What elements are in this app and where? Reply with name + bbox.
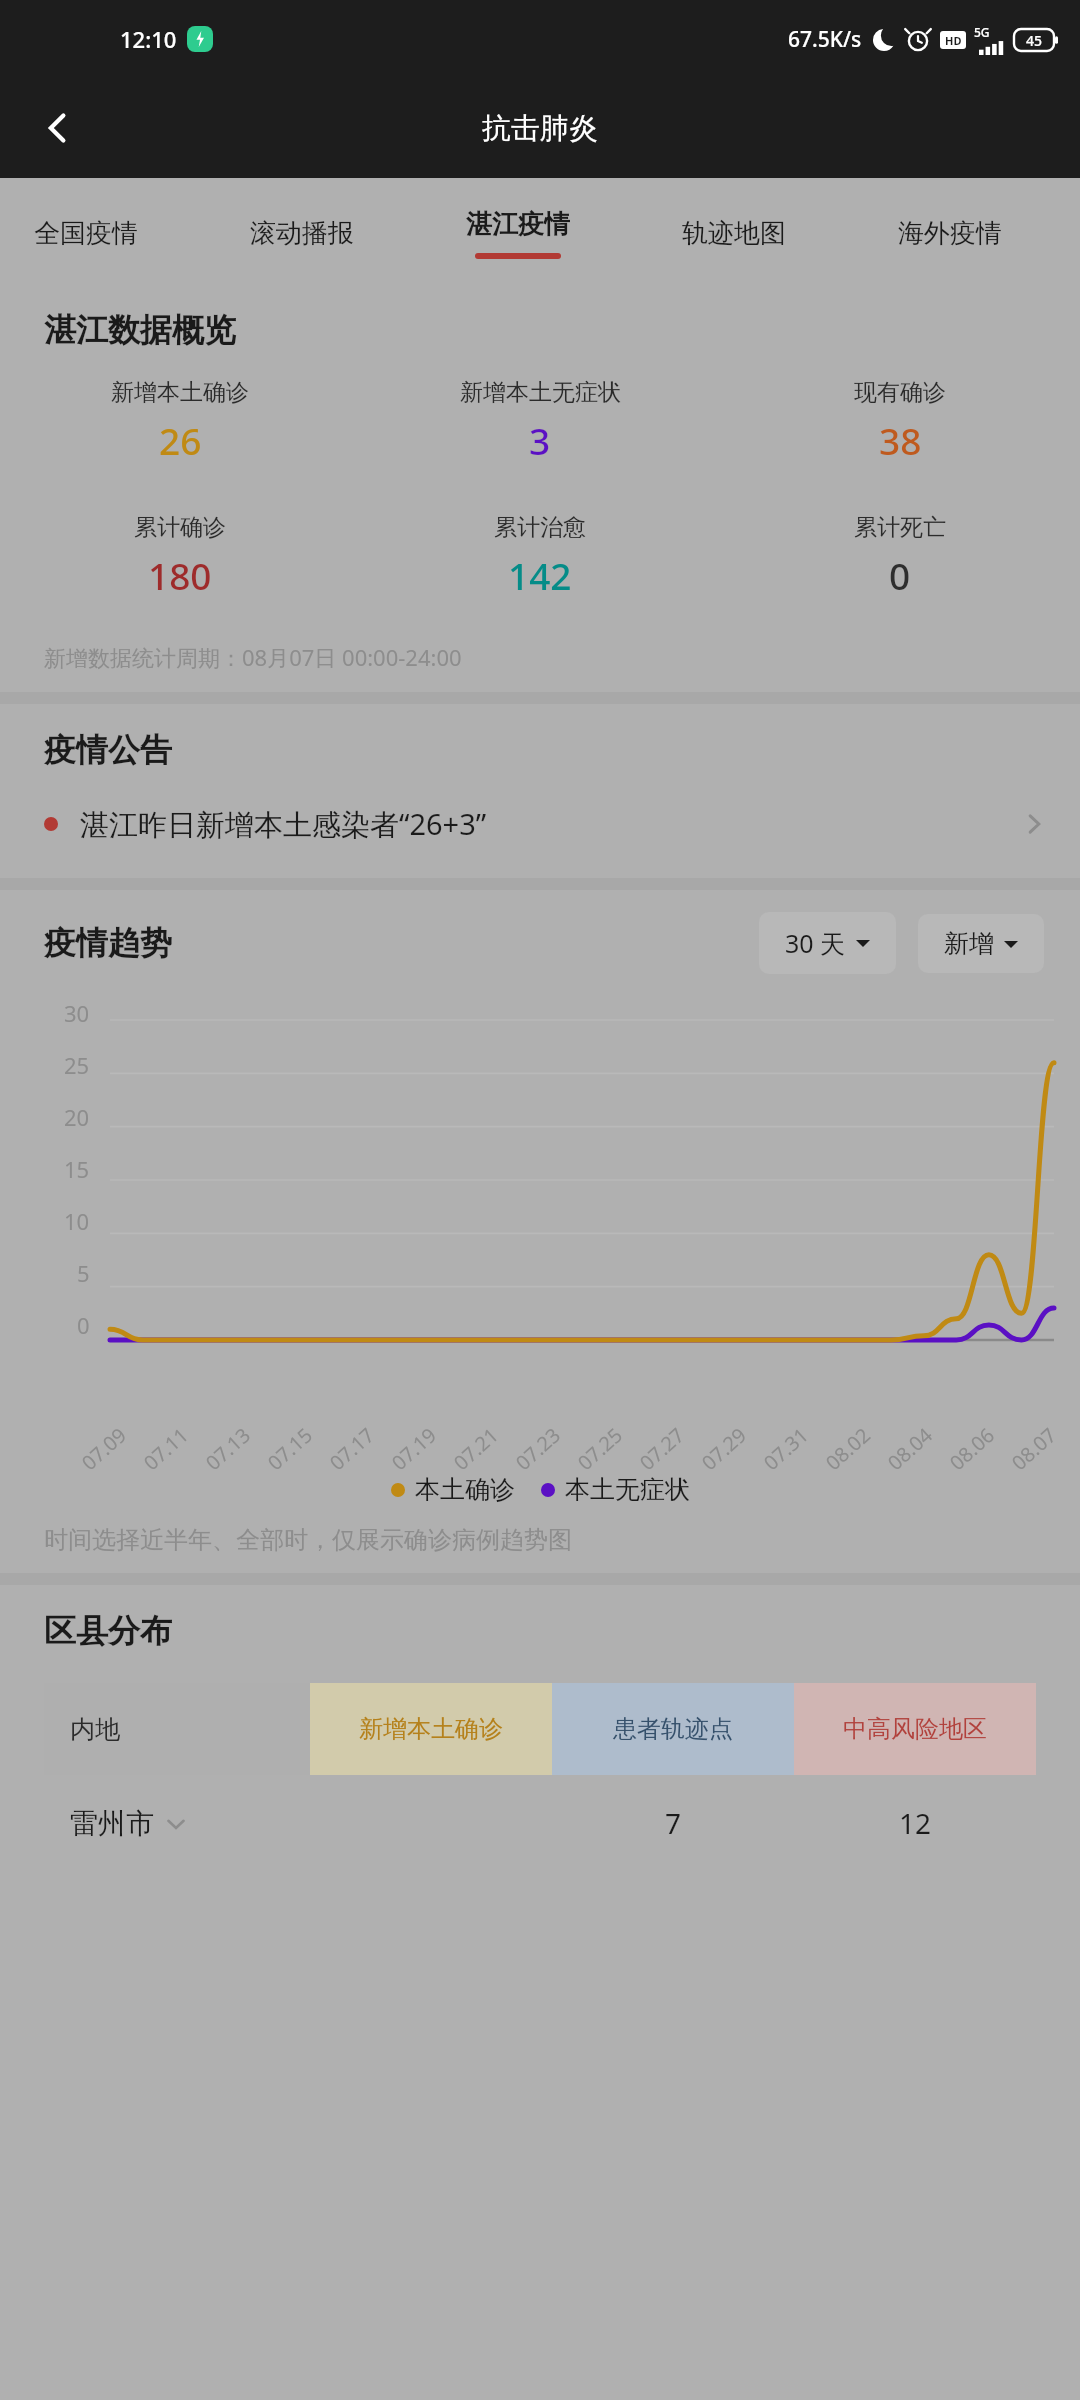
staticText: 30	[64, 998, 90, 1028]
button[interactable]: 雷州市	[0, 1775, 1080, 1871]
staticText: 45	[1026, 31, 1043, 50]
button[interactable]: 全国疫情	[0, 178, 194, 288]
staticText: 07.23	[510, 1421, 566, 1476]
staticText: 中高风险地区	[843, 1714, 987, 1744]
button[interactable]: 海外疫情	[842, 178, 1058, 288]
staticText: 湛江昨日新增本土感染者“26+3”	[80, 804, 1022, 844]
staticText: 38	[879, 415, 922, 465]
button[interactable]: 新增	[918, 914, 1044, 973]
staticText: 0	[889, 550, 911, 600]
staticText: 患者轨迹点	[613, 1714, 733, 1744]
staticText: 疫情公告	[44, 730, 172, 770]
staticText: 07.29	[696, 1421, 752, 1476]
staticText: 湛江数据概览	[44, 310, 236, 350]
staticText: 内地	[70, 1714, 120, 1745]
staticText: 07.19	[386, 1421, 442, 1476]
button[interactable]: 滚动播报	[194, 178, 410, 288]
staticText: 07.15	[262, 1421, 318, 1476]
button[interactable]: 30 天	[759, 912, 896, 974]
staticText: 07.09	[76, 1421, 132, 1476]
staticText: 新增	[944, 928, 994, 959]
staticText: 12	[899, 1804, 932, 1842]
staticText: 180	[148, 550, 212, 600]
staticText: 142	[508, 550, 572, 600]
staticText: 湛江疫情	[466, 208, 570, 241]
staticText: 08.06	[944, 1421, 1000, 1476]
staticText: 雷州市	[70, 1806, 154, 1841]
staticText: 20	[64, 1102, 90, 1132]
button[interactable]: Back	[26, 96, 90, 160]
button[interactable]: 轨迹地图	[626, 178, 842, 288]
staticText: 全国疫情	[34, 217, 138, 250]
staticText: 5	[77, 1258, 90, 1288]
staticText: 10	[64, 1206, 90, 1236]
staticText: 累计确诊	[134, 513, 226, 542]
staticText: 15	[64, 1154, 90, 1184]
staticText: 25	[64, 1050, 90, 1080]
button[interactable]: 湛江疫情	[410, 178, 626, 288]
staticText: 08.02	[820, 1421, 876, 1476]
staticText: 7	[665, 1804, 682, 1842]
staticText: 07.31	[758, 1421, 814, 1476]
staticText: 抗击肺炎	[482, 110, 598, 147]
staticText: 本土确诊	[415, 1474, 515, 1505]
staticText: 疫情趋势	[44, 923, 172, 963]
staticText: 时间选择近半年、全部时，仅展示确诊病例趋势图	[44, 1525, 572, 1555]
staticText: 本土无症状	[565, 1474, 690, 1505]
staticText: 67.5K/s	[788, 25, 862, 54]
staticText: 滚动播报	[250, 217, 354, 250]
staticText: 新增数据统计周期：08月07日 00:00-24:00	[44, 642, 462, 672]
staticText: 累计治愈	[494, 513, 586, 542]
staticText: 新增本土确诊	[359, 1714, 503, 1744]
staticText: 现有确诊	[854, 378, 946, 407]
staticText: 5G	[974, 24, 990, 40]
staticText: 07.17	[324, 1421, 380, 1476]
staticText: 0	[77, 1310, 90, 1340]
staticText: 08.04	[882, 1421, 938, 1476]
staticText: 12:10	[120, 24, 177, 54]
staticText: 07.27	[634, 1421, 690, 1476]
staticText: 累计死亡	[854, 513, 946, 542]
staticText: 新增本土无症状	[460, 378, 621, 407]
staticText: 轨迹地图	[682, 217, 786, 250]
staticText: 07.11	[138, 1421, 194, 1476]
staticText: 新增本土确诊	[111, 378, 249, 407]
staticText: 07.13	[200, 1421, 256, 1476]
staticText: 07.25	[572, 1421, 628, 1476]
staticText: 区县分布	[44, 1611, 172, 1651]
staticText: 3	[529, 415, 551, 465]
staticText: 07.21	[448, 1421, 504, 1476]
staticText: HD	[945, 33, 962, 48]
staticText: 26	[159, 415, 202, 465]
button[interactable]: 湛江昨日新增本土感染者“26+3”	[0, 796, 1080, 852]
staticText: 海外疫情	[898, 217, 1002, 250]
staticText: 08.07	[1006, 1421, 1062, 1476]
staticText: 30 天	[785, 926, 846, 960]
